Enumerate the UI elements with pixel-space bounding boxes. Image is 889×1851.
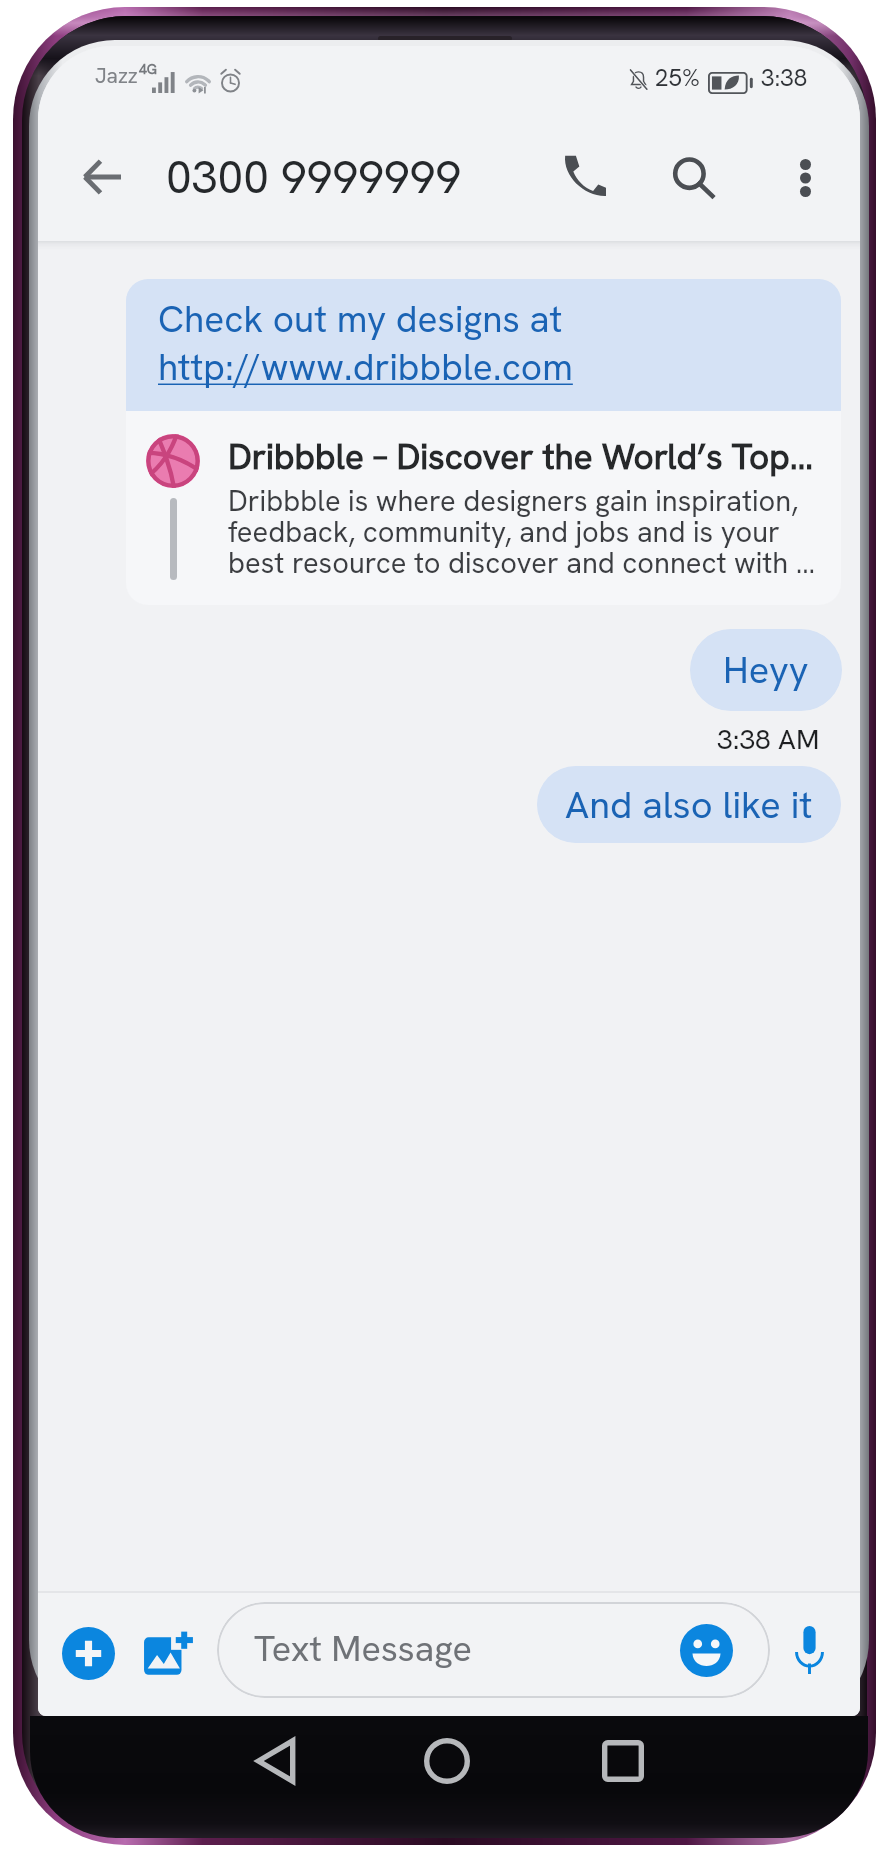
button[interactable]: Back <box>238 1723 314 1799</box>
staticText: And also like it <box>565 780 813 830</box>
button[interactable]: Heyy <box>690 629 842 711</box>
staticText: 0300 9999999 <box>166 147 462 207</box>
staticText: Check out my designs at <box>158 295 563 343</box>
button[interactable]: Call <box>546 137 622 213</box>
button[interactable]: Insert emoji <box>667 1611 745 1689</box>
button[interactable]: Home <box>409 1723 485 1799</box>
staticText: http://www.dribbble.com <box>158 343 573 391</box>
button[interactable]: Navigate up <box>64 139 140 215</box>
button[interactable]: Search <box>656 140 732 216</box>
button[interactable]: And also like it <box>537 766 841 843</box>
staticText: 3:38 <box>761 62 808 93</box>
button[interactable]: Check out my designs at <box>126 279 841 605</box>
staticText: 3:38 AM <box>717 721 820 757</box>
staticText: 25% <box>655 62 700 93</box>
button[interactable]: Send picture <box>129 1614 209 1694</box>
button[interactable]: Add attachment <box>49 1614 128 1693</box>
button[interactable]: Voice input <box>779 1620 839 1680</box>
button[interactable]: More options <box>767 140 843 216</box>
staticText: Heyy <box>723 645 809 695</box>
staticText: Dribbble is where designers gain inspira… <box>228 482 831 582</box>
staticText: Dribbble – Discover the World’s Top… <box>228 434 814 480</box>
button[interactable]: Recent apps <box>585 1723 661 1799</box>
staticText: 4G <box>139 60 158 78</box>
staticText: Text Message <box>254 1625 472 1672</box>
button[interactable]: Text Message <box>217 1602 770 1698</box>
staticText: Jazz <box>95 62 138 89</box>
